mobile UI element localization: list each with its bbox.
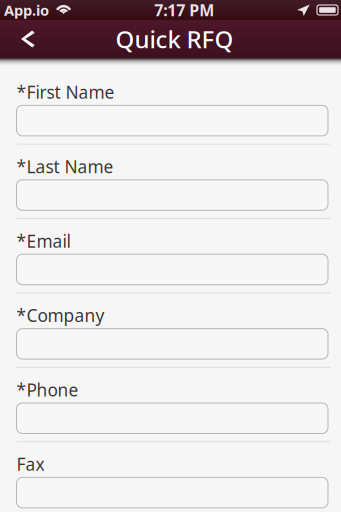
- staticText: *Phone: [17, 378, 79, 401]
- staticText: *Company: [17, 304, 105, 327]
- staticText: Quick RFQ: [115, 23, 233, 55]
- staticText: *First Name: [17, 81, 115, 104]
- staticText: *Email: [17, 229, 71, 252]
- staticText: *Last Name: [17, 155, 114, 178]
- staticText: App.io: [4, 0, 49, 20]
- staticText: 7:17 PM: [154, 0, 214, 21]
- staticText: Fax: [17, 453, 45, 476]
- button[interactable]: Back: [0, 20, 49, 58]
